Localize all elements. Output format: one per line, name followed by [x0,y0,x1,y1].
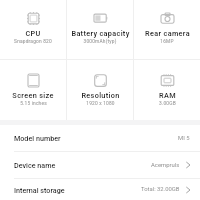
button[interactable]: RAM [134,60,200,120]
button[interactable]: CPU [0,0,66,59]
staticText: 3.00GB [159,101,176,107]
button[interactable]: Rear camera [134,0,200,59]
staticText: Total: 32.00GB [141,186,180,193]
staticText: 16MP [160,39,174,45]
staticText: Rear camera [145,29,190,38]
staticText: MI 5 [178,135,190,142]
staticText: Acempruls [151,162,180,169]
staticText: Resolution [81,91,120,100]
staticText: RAM [159,91,176,100]
staticText: Internal storage [14,186,65,194]
staticText: 5.15 inches [20,101,47,107]
staticText: Device name [14,161,56,169]
button[interactable]: Model number [0,125,200,151]
staticText: Model number [14,134,61,142]
staticText: Snapdragon 820 [14,39,52,45]
button[interactable]: Resolution [67,60,133,120]
staticText: CPU [25,29,41,38]
staticText: Screen size [12,91,54,100]
staticText: 1920 x 1080 [86,101,115,107]
button[interactable]: Screen size [0,60,66,120]
staticText: 3000mAh(typ) [83,39,117,45]
button[interactable]: Device name [0,152,200,178]
button[interactable]: Internal storage [0,179,200,200]
staticText: Battery capacity [71,29,130,38]
button[interactable]: Battery capacity [67,0,133,59]
